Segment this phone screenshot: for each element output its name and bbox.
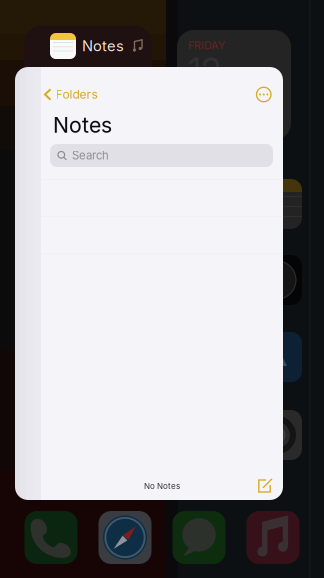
button[interactable]: Folders <box>44 87 97 102</box>
button[interactable]: Messages <box>172 511 225 564</box>
staticText: No Notes <box>144 481 180 491</box>
button[interactable]: Safari <box>98 511 151 564</box>
staticText: 12 <box>188 50 221 92</box>
button[interactable]: New note <box>257 478 272 493</box>
staticText: Folders <box>55 87 97 102</box>
staticText: FRIDAY <box>188 39 225 52</box>
button[interactable]: More options <box>256 87 271 102</box>
staticText: Notes <box>53 112 112 138</box>
staticText: Notes <box>82 37 124 55</box>
button[interactable]: Notes <box>15 67 283 500</box>
staticText: Search <box>72 149 109 162</box>
button[interactable]: Phone <box>24 511 77 564</box>
button[interactable]: Search <box>50 144 273 167</box>
button[interactable]: Music <box>246 511 299 564</box>
